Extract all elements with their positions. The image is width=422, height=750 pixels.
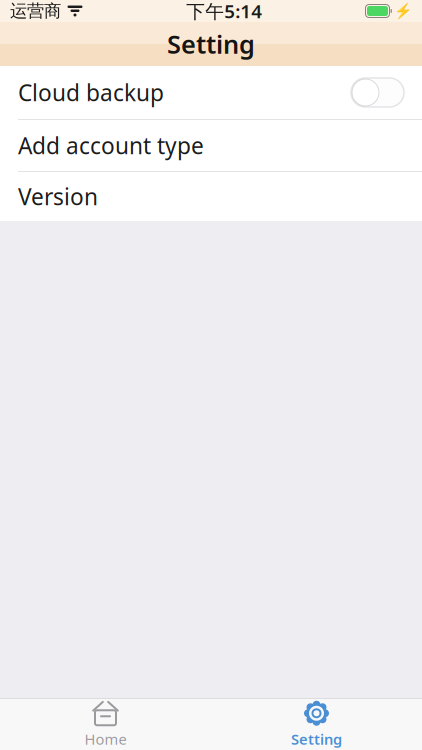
- button[interactable]: Home: [0, 699, 211, 750]
- button[interactable]: Cloud backup: [0, 66, 422, 119]
- staticText: Cloud backup: [18, 77, 164, 107]
- staticText: Home: [84, 729, 126, 749]
- staticText: Version: [18, 181, 98, 211]
- button[interactable]: Add account type: [0, 120, 422, 171]
- staticText: ⚡: [394, 3, 412, 19]
- staticText: 下午5:14: [186, 0, 262, 23]
- staticText: Setting: [167, 27, 255, 61]
- button[interactable]: Setting: [211, 699, 422, 750]
- staticText: Setting: [291, 729, 342, 749]
- button[interactable]: Cloud backup toggle: [351, 78, 404, 107]
- staticText: Add account type: [18, 130, 204, 160]
- button[interactable]: Version: [0, 172, 422, 221]
- staticText: 运营商: [10, 0, 61, 22]
